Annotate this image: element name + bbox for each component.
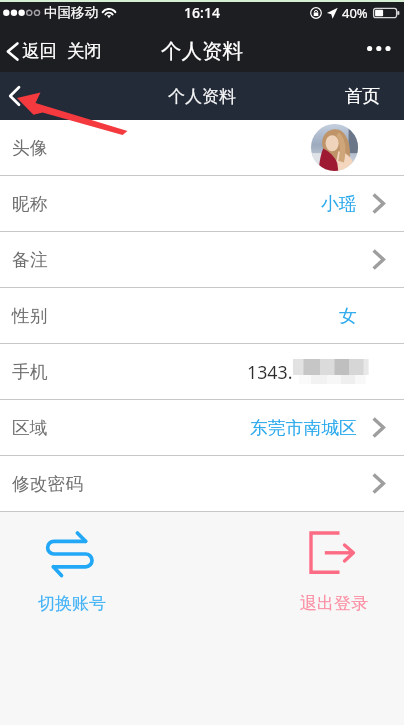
staticText: 区域 bbox=[12, 417, 48, 439]
staticText: 手机 bbox=[12, 361, 48, 383]
button[interactable]: 备注 bbox=[0, 232, 404, 287]
staticText: 16:14 bbox=[0, 3, 404, 22]
staticText: 首页 bbox=[345, 85, 380, 107]
staticText: 40% bbox=[342, 4, 368, 22]
button[interactable]: Back bbox=[0, 74, 29, 118]
staticText: 昵称 bbox=[12, 193, 48, 215]
staticText: 东莞市南城区 bbox=[250, 417, 357, 439]
staticText: 性别 bbox=[12, 305, 48, 327]
staticText: 修改密码 bbox=[12, 473, 84, 495]
button[interactable]: 头像 bbox=[0, 120, 404, 175]
staticText: 退出登录 bbox=[300, 593, 368, 614]
button[interactable]: 区域 bbox=[0, 400, 404, 455]
staticText: 个人资料 bbox=[0, 86, 404, 107]
button[interactable]: 手机 bbox=[0, 344, 404, 399]
staticText: 关闭 bbox=[67, 40, 102, 62]
button[interactable]: More options bbox=[354, 38, 404, 63]
button[interactable]: 性别 bbox=[0, 288, 404, 343]
button[interactable]: 退出登录 bbox=[286, 522, 380, 616]
button[interactable]: 昵称 bbox=[0, 176, 404, 231]
staticText: 1343. bbox=[247, 360, 293, 384]
staticText: 个人资料 bbox=[0, 38, 404, 64]
staticText: 小瑶 bbox=[321, 193, 357, 215]
staticText: 女 bbox=[339, 305, 357, 327]
button[interactable]: Avatar bbox=[311, 124, 358, 171]
staticText: 中国移动 bbox=[44, 4, 98, 21]
staticText: 备注 bbox=[12, 249, 48, 271]
button[interactable]: 首页 bbox=[321, 73, 404, 119]
button[interactable]: 切换账号 bbox=[24, 522, 118, 616]
staticText: 返回 bbox=[22, 40, 57, 62]
staticText: 头像 bbox=[12, 137, 48, 159]
button[interactable]: 返回 bbox=[0, 40, 110, 62]
button[interactable]: 修改密码 bbox=[0, 456, 404, 511]
staticText: 切换账号 bbox=[38, 593, 106, 614]
